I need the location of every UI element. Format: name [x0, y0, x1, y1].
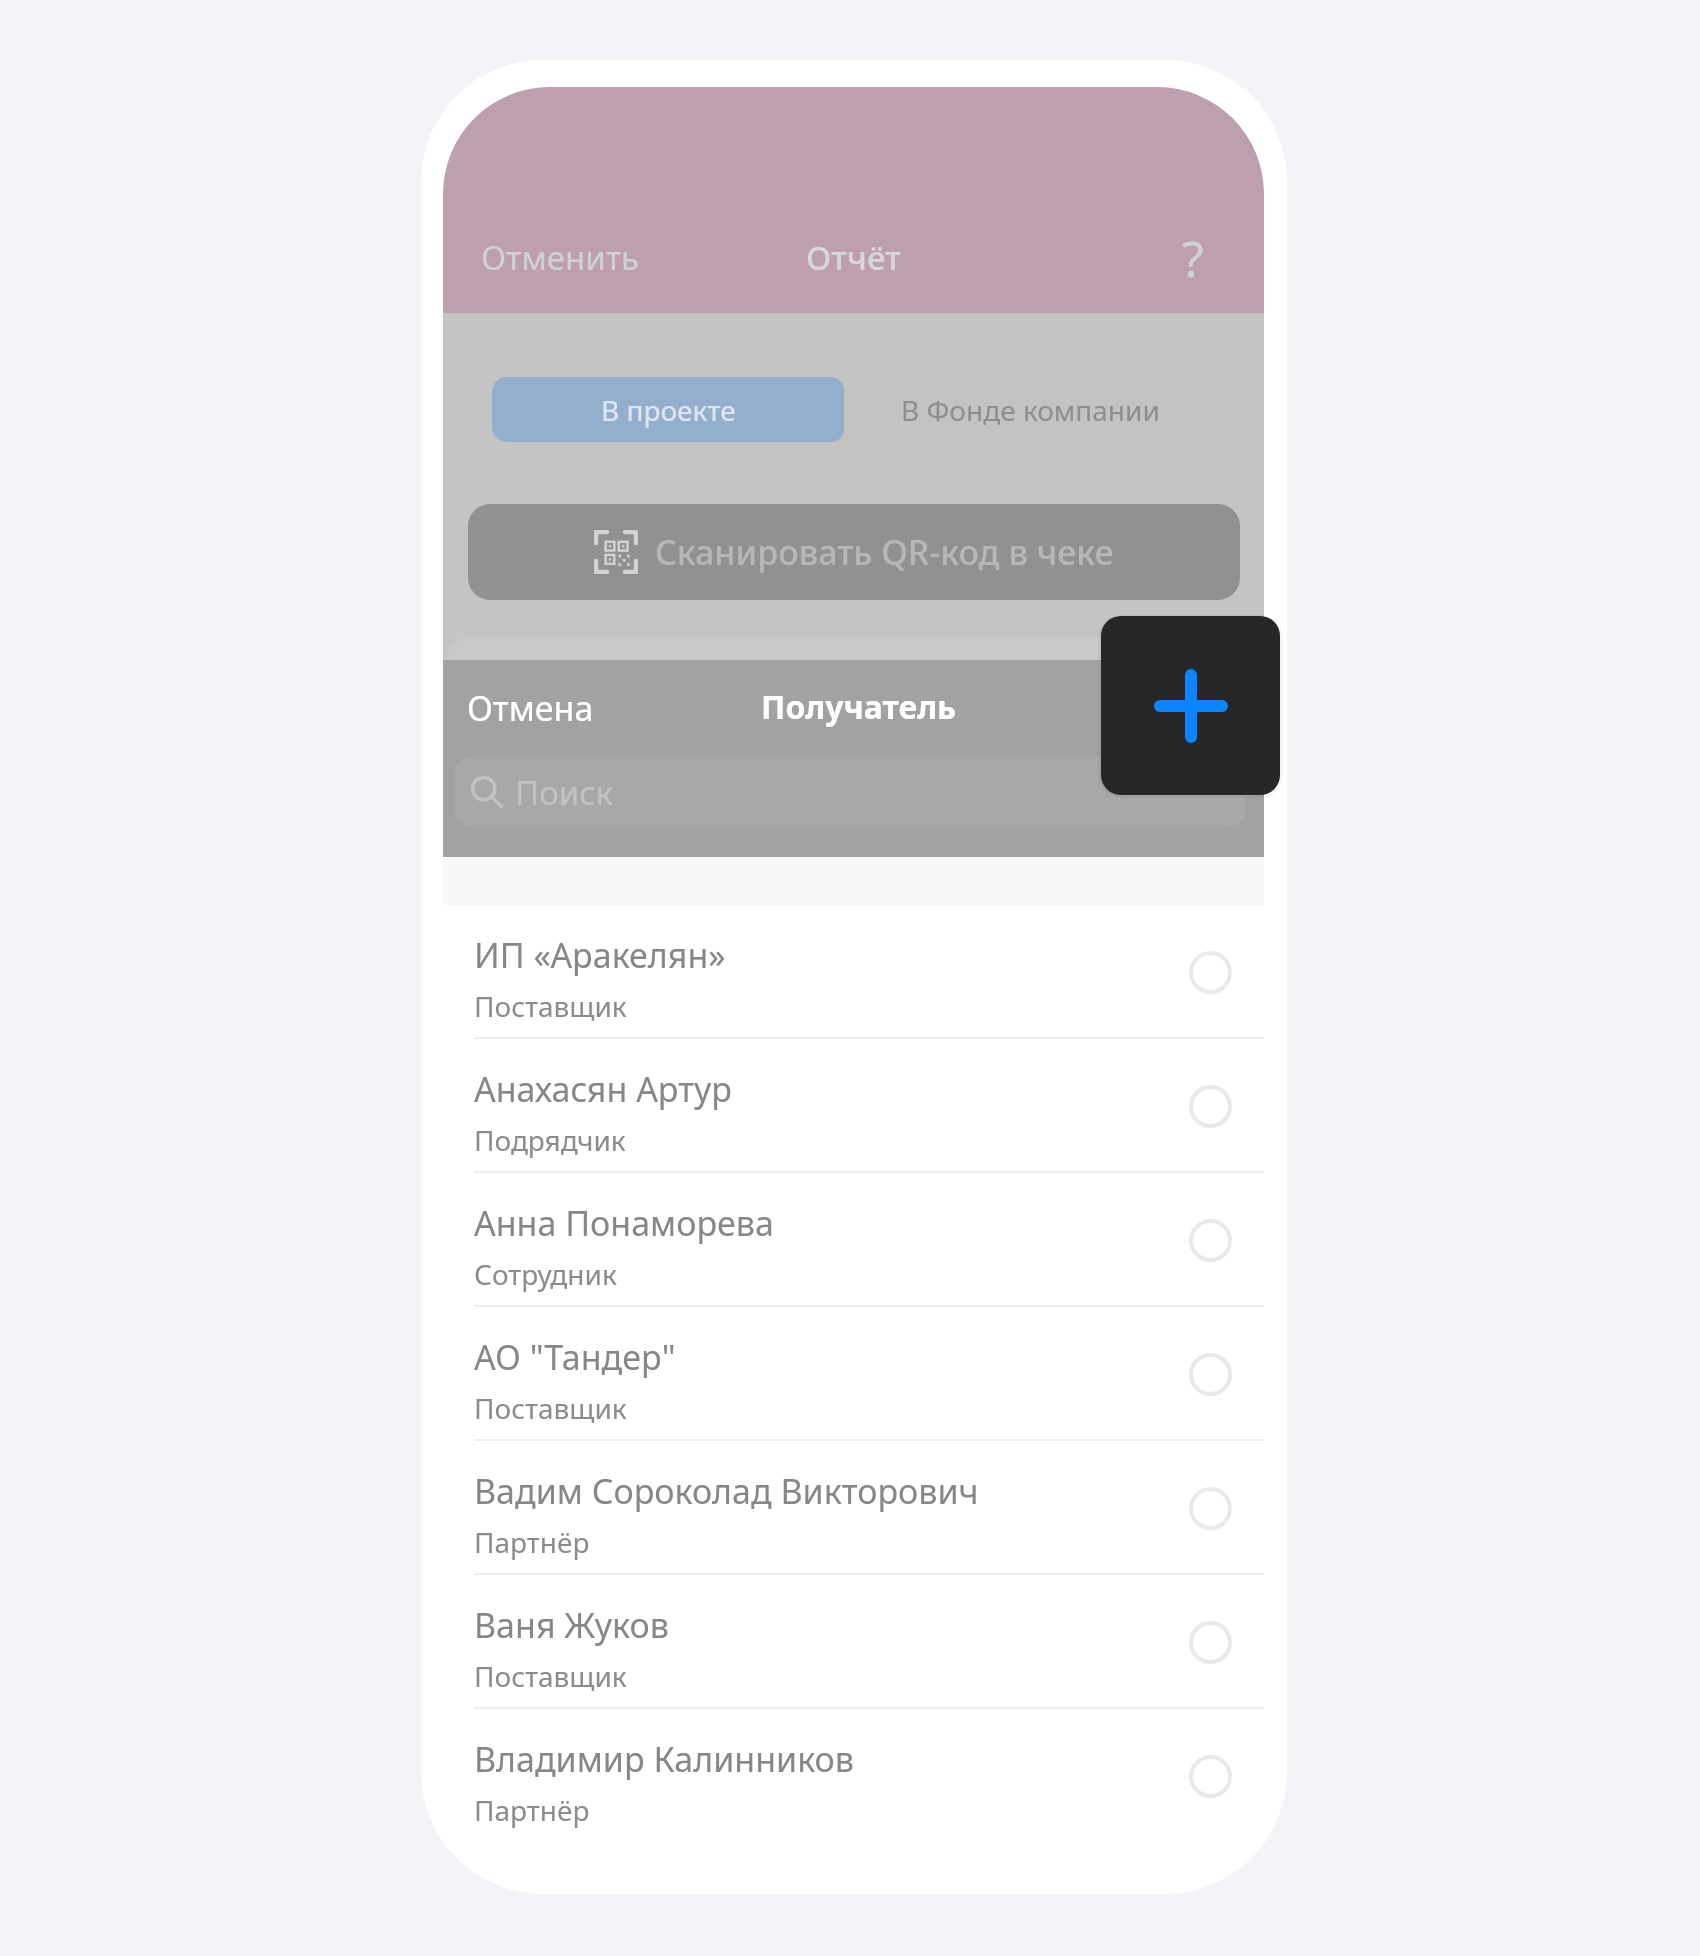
button[interactable]: Владимир Калинников	[443, 1709, 1264, 1843]
staticText: ?	[1182, 224, 1204, 284]
staticText: Поставщик	[474, 987, 627, 1025]
staticText: Анахасян Артур	[474, 1066, 732, 1112]
staticText: Партнёр	[474, 1523, 590, 1561]
staticText: Отменить	[481, 235, 640, 280]
button[interactable]: Add	[1101, 616, 1280, 795]
staticText: Вадим Сороколад Викторович	[474, 1468, 979, 1514]
staticText: Подрядчик	[474, 1121, 626, 1159]
button[interactable]: В Фонде компании	[844, 377, 1216, 442]
button[interactable]: Анна Понаморева	[443, 1173, 1264, 1307]
staticText: Владимир Калинников	[474, 1736, 854, 1782]
button[interactable]: В проекте	[492, 377, 844, 442]
button[interactable]: ИП «Аракелян»	[443, 905, 1264, 1039]
button[interactable]: Help	[1182, 224, 1204, 284]
staticText: В проекте	[601, 391, 736, 429]
staticText: Получатель	[761, 685, 956, 729]
staticText: Партнёр	[474, 1791, 590, 1829]
staticText: Сканировать QR-код в чеке	[655, 529, 1114, 575]
staticText: ИП «Аракелян»	[474, 932, 726, 978]
staticText: В Фонде компании	[901, 391, 1160, 429]
button[interactable]: Сканировать QR-код в чеке	[468, 504, 1240, 600]
button[interactable]: Отмена	[467, 685, 594, 731]
button[interactable]: Поиск	[455, 757, 1245, 827]
button[interactable]: Анахасян Артур	[443, 1039, 1264, 1173]
staticText: Сотрудник	[474, 1255, 617, 1293]
button[interactable]: АО "Тандер"	[443, 1307, 1264, 1441]
staticText: АО "Тандер"	[474, 1334, 676, 1380]
button[interactable]: Отменить	[481, 235, 640, 280]
staticText: Поиск	[515, 770, 614, 815]
staticText: Анна Понаморева	[474, 1200, 774, 1246]
staticText: Поставщик	[474, 1657, 627, 1695]
staticText: Отчёт	[806, 235, 901, 280]
staticText: Поставщик	[474, 1389, 627, 1427]
button[interactable]: Вадим Сороколад Викторович	[443, 1441, 1264, 1575]
staticText: Ваня Жуков	[474, 1602, 669, 1648]
staticText: Отмена	[467, 685, 594, 731]
button[interactable]: Ваня Жуков	[443, 1575, 1264, 1709]
